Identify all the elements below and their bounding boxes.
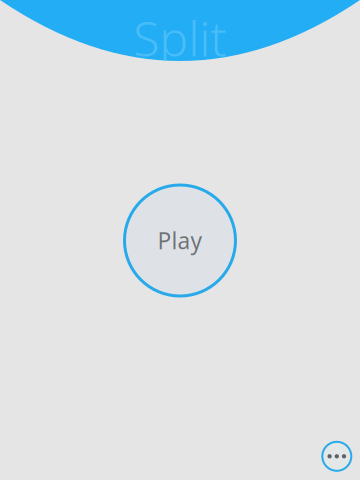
- staticText: Play: [157, 225, 202, 255]
- staticText: Split: [133, 6, 226, 70]
- button[interactable]: More options: [322, 442, 351, 471]
- button[interactable]: Play: [124, 185, 235, 296]
